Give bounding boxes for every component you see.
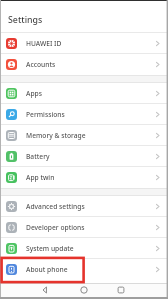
button[interactable]: Memory & storage: [0, 125, 168, 146]
button[interactable]: System update: [0, 238, 168, 259]
button[interactable]: Developer options: [0, 217, 168, 238]
button[interactable]: Battery: [0, 146, 168, 167]
staticText: Battery: [26, 152, 50, 161]
staticText: Accounts: [26, 60, 56, 69]
staticText: Settings: [8, 14, 43, 26]
staticText: About phone: [26, 265, 68, 274]
button[interactable]: [117, 286, 125, 294]
button[interactable]: App twin: [0, 167, 168, 188]
staticText: App twin: [26, 173, 55, 182]
button[interactable]: Permissions: [0, 104, 168, 125]
button[interactable]: HUAWEI ID: [0, 33, 168, 54]
staticText: Memory & storage: [26, 131, 86, 140]
button[interactable]: [41, 286, 49, 294]
staticText: Developer options: [26, 223, 85, 232]
button[interactable]: Apps: [0, 83, 168, 104]
staticText: System update: [26, 244, 74, 253]
button[interactable]: Accounts: [0, 54, 168, 75]
staticText: Advanced settings: [26, 202, 85, 211]
staticText: HUAWEI ID: [26, 39, 62, 48]
button[interactable]: [80, 286, 88, 294]
button[interactable]: About phone: [0, 259, 168, 280]
staticText: Apps: [26, 89, 42, 98]
staticText: Permissions: [26, 110, 65, 119]
button[interactable]: Advanced settings: [0, 196, 168, 217]
